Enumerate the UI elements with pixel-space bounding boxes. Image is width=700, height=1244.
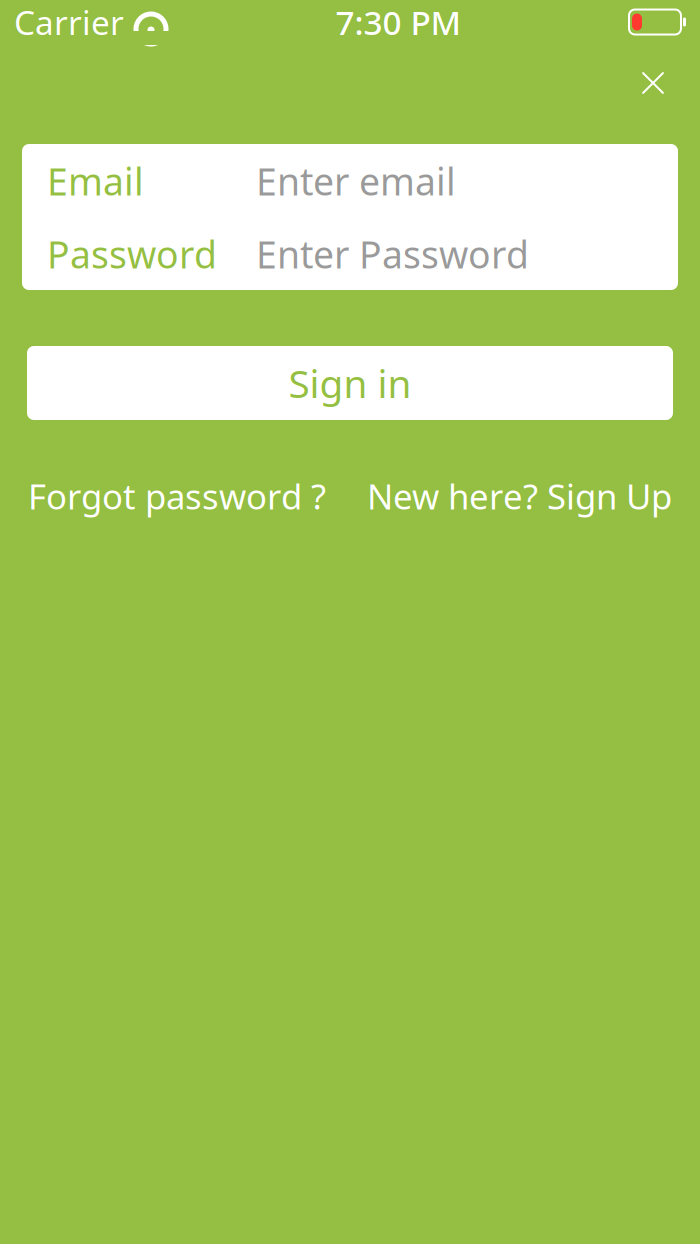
button[interactable]: New here? Sign Up [367,473,672,519]
staticText: Password [47,229,217,279]
staticText: Carrier [14,0,124,44]
button[interactable]: Sign in [27,346,673,420]
staticText: 7:30 PM [335,0,461,44]
staticText: Sign in [288,357,411,409]
staticText: Enter Password [256,229,529,279]
button[interactable]: Close [628,58,678,108]
staticText: Email [47,156,144,206]
button[interactable]: Forgot password ? [28,473,326,519]
staticText: Enter email [256,156,456,206]
staticText: New here? Sign Up [367,473,672,519]
staticText: Forgot password ? [28,473,326,519]
